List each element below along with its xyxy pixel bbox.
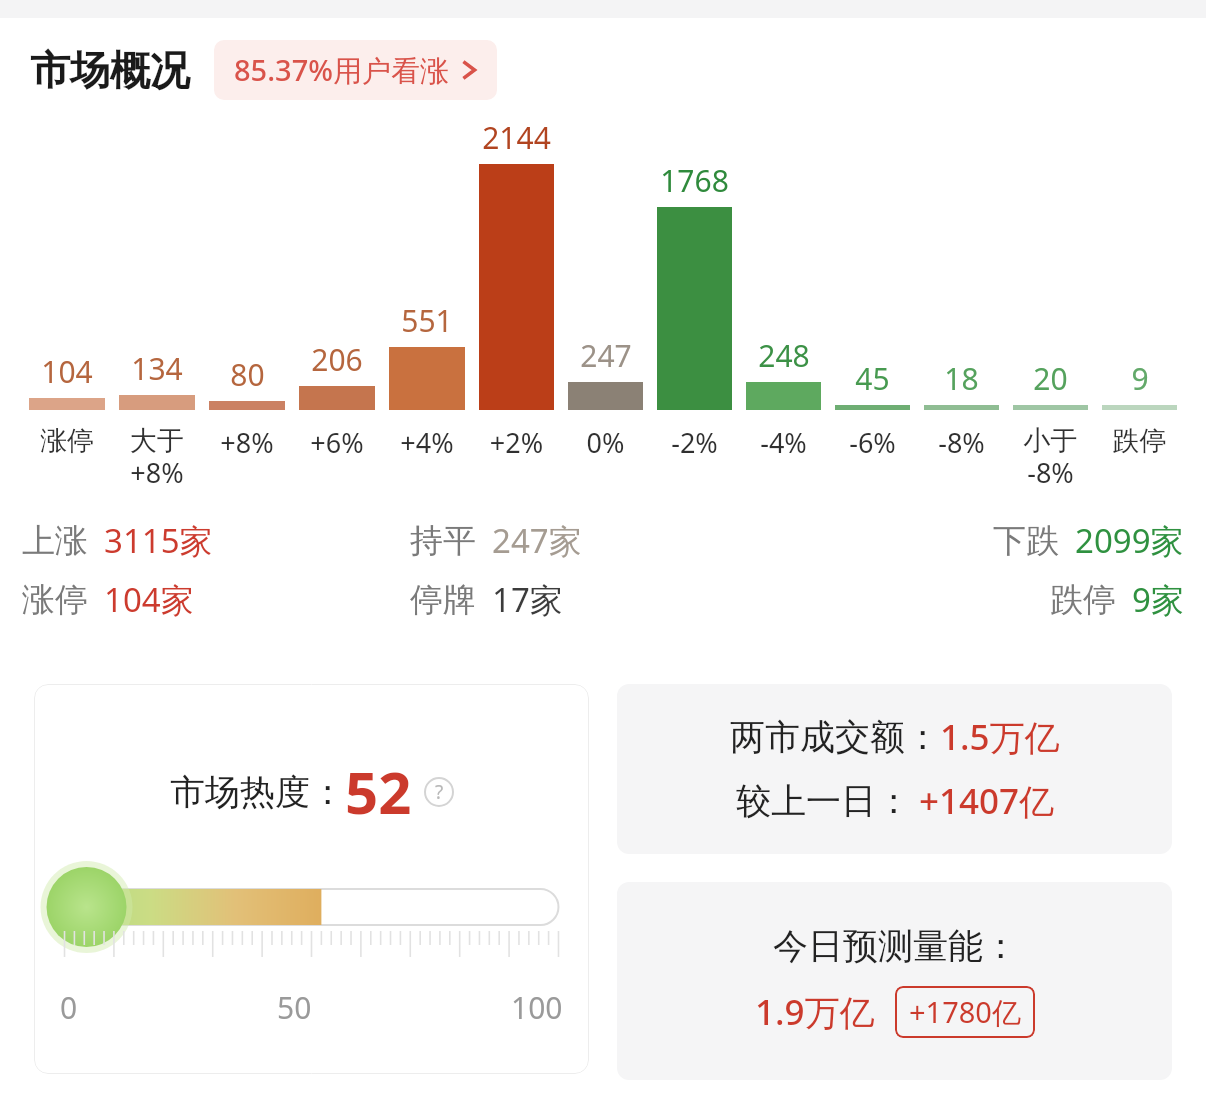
staticText: 104 [41,351,93,392]
staticText: 17家 [492,577,563,622]
button[interactable]: 1768 [650,100,739,461]
button[interactable]: Help [424,777,454,807]
staticText: 大于 +8% [112,424,202,491]
button[interactable]: 206 [292,100,382,461]
staticText: 今日预测量能： [773,924,1018,968]
staticText: 52 [345,752,412,831]
staticText: 跌停 [1050,579,1116,621]
staticText: 3115家 [104,518,213,563]
staticText: 551 [401,300,453,341]
button[interactable]: 85.37%用户看涨 [214,40,497,100]
staticText: 市场概况 [30,45,190,95]
button[interactable]: 80 [202,100,292,461]
staticText: 18 [944,358,979,399]
button[interactable]: 45 [828,100,917,461]
button[interactable]: 104 [22,100,112,458]
button[interactable]: 市场热度： [34,684,589,1074]
staticText: 85.37%用户看涨 [234,50,449,90]
staticText: +1407亿 [919,777,1055,825]
button[interactable]: 2144 [472,100,561,461]
staticText: 小于 -8% [1006,424,1095,491]
button[interactable]: 247 [561,100,650,461]
staticText: +8% [202,424,292,461]
staticText: 100 [511,987,563,1028]
staticText: 2144 [482,117,551,158]
staticText: 104家 [104,577,194,622]
button[interactable]: 551 [382,100,472,461]
staticText: 134 [131,348,183,389]
staticText: 0% [561,424,650,461]
staticText: 80 [230,354,265,395]
staticText: 9家 [1132,577,1184,622]
staticText: 跌停 [1095,424,1184,458]
staticText: 涨停 [22,579,88,621]
staticText: +2% [472,424,561,461]
staticText: 0 [60,987,78,1028]
staticText: -8% [917,424,1006,461]
button[interactable]: 20 [1006,100,1095,491]
staticText: 停牌 [410,579,476,621]
staticText: 248 [758,335,810,376]
staticText: 20 [1033,358,1068,399]
staticText: 247家 [492,518,582,563]
button[interactable]: 18 [917,100,1006,461]
staticText: 涨停 [22,424,112,458]
staticText: +1780亿 [909,992,1021,1032]
button[interactable]: 9 [1095,100,1184,458]
staticText: 206 [311,339,363,380]
staticText: +4% [382,424,472,461]
button[interactable]: 今日预测量能： [617,882,1172,1080]
button[interactable]: 134 [112,100,202,491]
staticText: 1.5万亿 [940,713,1060,761]
staticText: 247 [580,335,632,376]
staticText: 50 [277,987,312,1028]
staticText: 持平 [410,520,476,562]
staticText: 1.9万亿 [755,988,875,1036]
staticText: ? [435,779,444,805]
staticText: -2% [650,424,739,461]
staticText: 1768 [660,160,729,201]
staticText: 下跌 [993,520,1059,562]
staticText: 9 [1131,358,1149,399]
staticText: 较上一日： [736,779,911,823]
staticText: -6% [828,424,917,461]
button[interactable]: 两市成交额： [617,684,1172,854]
staticText: 两市成交额： [730,715,940,759]
button[interactable]: 248 [739,100,828,461]
staticText: 上涨 [22,520,88,562]
staticText: -4% [739,424,828,461]
staticText: 45 [855,358,890,399]
staticText: 2099家 [1075,518,1184,563]
staticText: +6% [292,424,382,461]
staticText: 市场热度： [170,770,345,814]
